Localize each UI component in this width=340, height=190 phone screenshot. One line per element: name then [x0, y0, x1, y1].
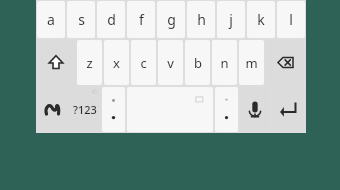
button[interactable]: l: [277, 1, 305, 38]
button[interactable]: Voice input: [240, 87, 270, 132]
staticText: h: [197, 10, 206, 29]
button[interactable]: v: [158, 40, 183, 85]
staticText: m: [245, 54, 258, 72]
button[interactable]: Backspace: [266, 40, 305, 85]
staticText: k: [257, 10, 265, 29]
button[interactable]: c: [131, 40, 156, 85]
button[interactable]: ©: [70, 87, 100, 132]
button[interactable]: Emoji and language: [37, 87, 68, 132]
staticText: f: [139, 10, 144, 29]
staticText: c: [140, 54, 147, 72]
staticText: z: [86, 54, 93, 72]
button[interactable]: b: [185, 40, 210, 85]
button[interactable]: h: [187, 1, 215, 38]
staticText: x: [113, 54, 120, 72]
button[interactable]: a: [37, 1, 65, 38]
button[interactable]: f: [127, 1, 155, 38]
button[interactable]: g: [157, 1, 185, 38]
staticText: l: [289, 10, 293, 29]
button[interactable]: Period: [215, 87, 238, 132]
button[interactable]: s: [67, 1, 95, 38]
button[interactable]: m: [239, 40, 264, 85]
button[interactable]: Comma: [102, 87, 125, 132]
button[interactable]: z: [77, 40, 102, 85]
staticText: g: [167, 10, 176, 29]
staticText: n: [220, 54, 229, 72]
button[interactable]: n: [212, 40, 237, 85]
button[interactable]: x: [104, 40, 129, 85]
staticText: ©: [92, 88, 97, 96]
button[interactable]: k: [247, 1, 275, 38]
staticText: ?123: [73, 102, 97, 117]
staticText: j: [229, 10, 233, 29]
staticText: s: [78, 10, 85, 29]
staticText: v: [167, 54, 174, 72]
button[interactable]: Enter: [272, 87, 305, 132]
button[interactable]: d: [97, 1, 125, 38]
staticText: d: [107, 10, 116, 29]
button[interactable]: Shift: [37, 40, 75, 85]
button[interactable]: j: [217, 1, 245, 38]
staticText: a: [47, 10, 55, 29]
staticText: b: [194, 54, 202, 72]
